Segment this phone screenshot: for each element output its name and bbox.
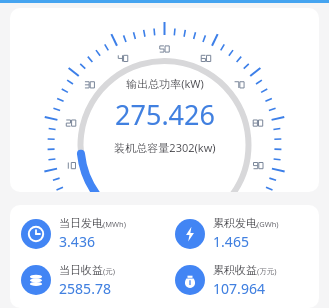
staticText: 装机总容量2302(kw)	[114, 140, 216, 155]
button[interactable]: Daily generation	[21, 216, 164, 251]
staticText: 3.436	[59, 232, 95, 251]
button[interactable]: 输出总功率(kW)	[10, 8, 319, 192]
staticText: 累积收益(万元)	[213, 263, 277, 277]
staticText: 累积发电(GWh)	[213, 216, 279, 230]
other: Daily generation	[21, 219, 51, 249]
staticText: 当日收益(元)	[59, 263, 115, 277]
staticText: 107.964	[213, 279, 265, 297]
staticText: 输出总功率(kW)	[126, 76, 204, 91]
button[interactable]: Total income	[175, 263, 319, 297]
staticText: 1.465	[213, 232, 249, 251]
button[interactable]: Total generation	[175, 216, 319, 251]
staticText: 当日发电(MWh)	[59, 216, 126, 230]
staticText: 275.426	[115, 96, 215, 133]
other: Daily income	[21, 265, 51, 295]
staticText: 2585.78	[59, 279, 111, 297]
button[interactable]: Daily income	[21, 263, 164, 297]
other: Total income	[175, 265, 205, 295]
other: Total generation	[175, 219, 205, 249]
